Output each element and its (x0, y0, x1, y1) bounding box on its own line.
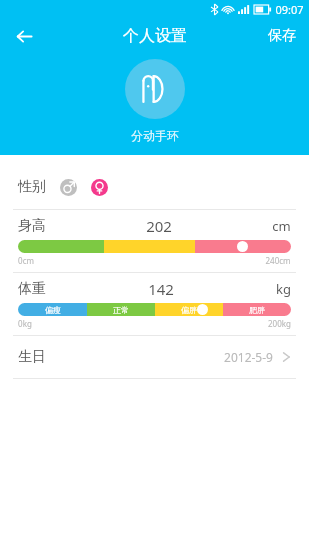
button[interactable]: 体重 (0, 273, 309, 335)
staticText: 2012-5-9 (224, 349, 273, 365)
staticText: 09:07 (275, 2, 304, 17)
staticText: 个人设置 (123, 26, 187, 46)
staticText: 身高 (18, 217, 46, 235)
staticText: 分动手环 (131, 128, 179, 143)
staticText: 体重 (18, 280, 46, 298)
staticText: 肥胖 (249, 305, 265, 315)
staticText: 142 (148, 279, 174, 299)
staticText: 偏瘦 (45, 305, 61, 315)
staticText: 偏胖 (181, 305, 197, 315)
button[interactable]: 身高 (0, 210, 309, 272)
staticText: 正常 (113, 305, 129, 315)
staticText: 200kg (268, 318, 291, 329)
staticText: cm (272, 217, 291, 235)
staticText: 保存 (268, 27, 296, 45)
button[interactable]: 生日 (0, 336, 309, 378)
staticText: 202 (146, 216, 172, 236)
button[interactable]: Female (91, 179, 108, 196)
button[interactable]: App logo (125, 59, 185, 119)
staticText: 生日 (18, 348, 46, 366)
staticText: 性别 (18, 178, 46, 196)
button[interactable]: Back (0, 18, 48, 54)
button[interactable]: 保存 (255, 18, 309, 54)
staticText: kg (276, 280, 291, 298)
staticText: 240cm (265, 255, 291, 266)
staticText: 0cm (18, 255, 34, 266)
staticText: 0kg (18, 318, 32, 329)
button[interactable]: Male (60, 179, 77, 196)
